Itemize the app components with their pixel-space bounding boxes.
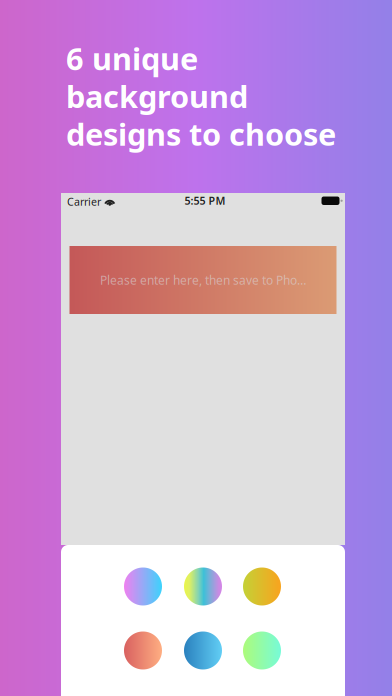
button[interactable]: Background style: [124, 567, 162, 605]
button[interactable]: Background style: [184, 631, 222, 669]
button[interactable]: Background style: [124, 631, 162, 669]
button[interactable]: Please enter here, then save to Pho…: [69, 246, 336, 314]
button[interactable]: Background style: [184, 567, 222, 605]
staticText: 5:55 PM: [184, 193, 225, 208]
button[interactable]: Background style: [243, 567, 281, 605]
button[interactable]: Background style: [243, 631, 281, 669]
staticText: Please enter here, then save to Pho…: [100, 272, 306, 288]
staticText: 6 unique background designs to choose: [66, 38, 336, 154]
staticText: Carrier: [67, 194, 101, 209]
